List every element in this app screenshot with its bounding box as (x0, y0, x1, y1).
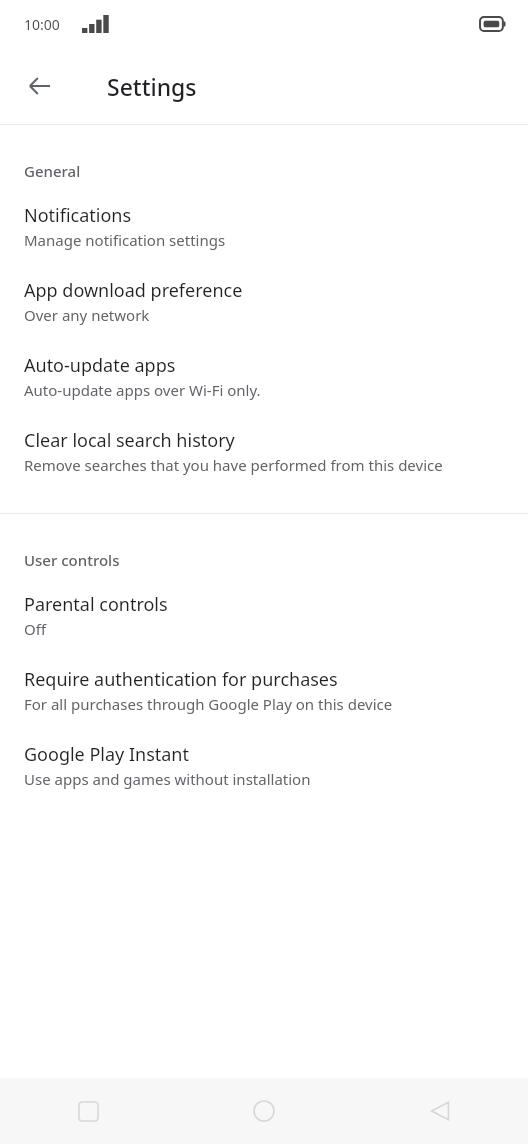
staticText: Notifications (24, 203, 132, 228)
staticText: For all purchases through Google Play on… (24, 694, 393, 714)
button[interactable]: Require authentication for purchases (0, 645, 528, 720)
staticText: Parental controls (24, 592, 168, 617)
staticText: General (24, 161, 81, 181)
button[interactable]: Auto-update apps (0, 331, 528, 406)
staticText: Manage notification settings (24, 230, 226, 250)
staticText: Over any network (24, 305, 150, 325)
button[interactable]: Back (16, 62, 64, 110)
staticText: App download preference (24, 278, 243, 303)
staticText: 10:00 (24, 15, 60, 34)
button[interactable]: Google Play Instant (0, 720, 528, 795)
staticText: Off (24, 619, 47, 639)
button[interactable]: Notifications (0, 181, 528, 256)
staticText: Auto-update apps (24, 353, 176, 378)
button[interactable]: Clear local search history (0, 406, 528, 481)
staticText: Settings (107, 71, 197, 102)
button[interactable]: App download preference (0, 256, 528, 331)
staticText: Clear local search history (24, 428, 235, 453)
staticText: Google Play Instant (24, 742, 189, 767)
button[interactable]: Parental controls (0, 570, 528, 645)
staticText: Require authentication for purchases (24, 667, 338, 692)
staticText: User controls (24, 550, 120, 570)
staticText: Use apps and games without installation (24, 769, 311, 789)
staticText: Auto-update apps over Wi-Fi only. (24, 380, 261, 400)
staticText: Remove searches that you have performed … (24, 455, 443, 475)
